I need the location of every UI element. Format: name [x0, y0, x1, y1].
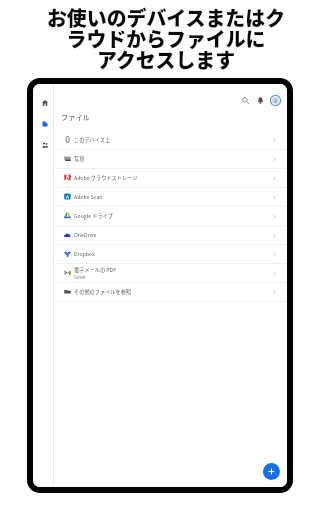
button[interactable]: Adobe Scan: [54, 188, 287, 207]
button[interactable]: その他のファイルを参照: [54, 283, 287, 302]
staticText: Google ドライブ: [74, 212, 114, 220]
button[interactable]: Notifications: [254, 94, 267, 107]
button[interactable]: OneDrive: [54, 226, 287, 245]
button[interactable]: Dropbox: [54, 245, 287, 264]
staticText: ファイル: [61, 112, 90, 122]
button[interactable]: Search: [239, 94, 252, 107]
button[interactable]: Home: [39, 97, 50, 108]
staticText: このデバイス上: [74, 136, 111, 144]
staticText: Adobe クラウドストレージ: [74, 174, 138, 182]
staticText: Gmail: [74, 274, 86, 280]
button[interactable]: Add: [263, 463, 280, 480]
button[interactable]: People: [39, 139, 50, 150]
button[interactable]: Google ドライブ: [54, 207, 287, 226]
staticText: Dropbox: [74, 250, 95, 258]
button[interactable]: Files: [39, 118, 50, 129]
staticText: 写真: [74, 155, 85, 163]
button[interactable]: 電子メールの PDF: [54, 264, 287, 283]
button[interactable]: Account: [269, 94, 282, 107]
staticText: その他のファイルを参照: [74, 288, 132, 296]
button[interactable]: 写真: [54, 150, 287, 169]
button[interactable]: このデバイス上: [54, 131, 287, 150]
staticText: 電子メールの PDF: [74, 266, 117, 274]
staticText: Adobe Scan: [74, 193, 103, 201]
staticText: OneDrive: [74, 231, 97, 239]
staticText: お使いのデバイスまたはク ラウドからファイルに アクセスします: [6, 9, 320, 72]
button[interactable]: Adobe クラウドストレージ: [54, 169, 287, 188]
